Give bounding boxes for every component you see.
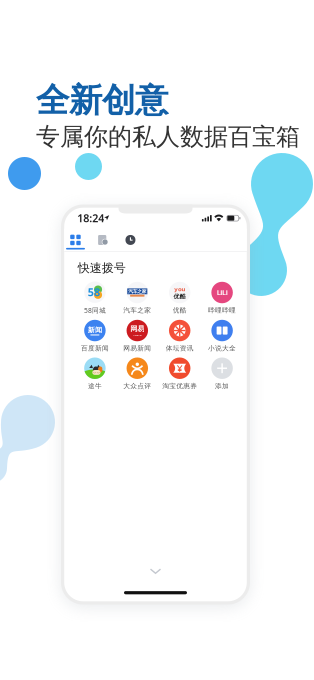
staticText: 汽车之家: [127, 288, 147, 294]
button[interactable]: 淘宝优惠券: [158, 357, 201, 390]
button[interactable]: Collapse: [144, 563, 166, 580]
staticText: 汽车之家: [123, 306, 151, 314]
staticText: 快速拨号: [78, 261, 126, 275]
button[interactable]: 添加: [201, 357, 243, 390]
staticText: 全新创意: [36, 80, 168, 121]
button[interactable]: 小说大全: [201, 320, 243, 352]
button[interactable]: Grid: [66, 230, 85, 250]
staticText: 哔哩哔哩: [208, 306, 236, 314]
staticText: 新闻: [87, 325, 103, 335]
button[interactable]: 汽车之家: [116, 282, 158, 314]
staticText: you: [174, 284, 186, 293]
staticText: 小说大全: [208, 344, 236, 352]
button[interactable]: 网易: [116, 320, 158, 352]
button[interactable]: 途牛: [74, 357, 116, 390]
staticText: NETEASE: [133, 334, 142, 337]
staticText: 优酷: [173, 306, 187, 314]
staticText: 途牛: [88, 382, 102, 390]
staticText: 58同城: [84, 306, 106, 315]
staticText: 网易新闻: [123, 344, 151, 352]
button[interactable]: LiLi: [201, 282, 243, 314]
button[interactable]: 体坛资讯: [158, 320, 201, 352]
button[interactable]: 新闻: [74, 320, 116, 352]
staticText: LiLi: [216, 287, 228, 298]
button[interactable]: Documents: [94, 230, 112, 250]
staticText: 淘宝优惠券: [162, 382, 197, 390]
staticText: 优酷: [173, 293, 187, 301]
staticText: 体坛资讯: [166, 344, 194, 352]
staticText: 58: [87, 284, 101, 300]
staticText: 专属你的私人数据百宝箱: [36, 122, 300, 151]
button[interactable]: 大众点评: [116, 357, 158, 390]
staticText: 百度新闻: [81, 344, 109, 352]
staticText: 大众点评: [123, 382, 151, 390]
button[interactable]: History: [121, 230, 140, 250]
staticText: 添加: [215, 382, 229, 390]
button[interactable]: you: [158, 282, 201, 314]
staticText: 网易: [129, 324, 145, 333]
button[interactable]: 58: [74, 281, 116, 315]
staticText: 18:24: [77, 211, 104, 225]
